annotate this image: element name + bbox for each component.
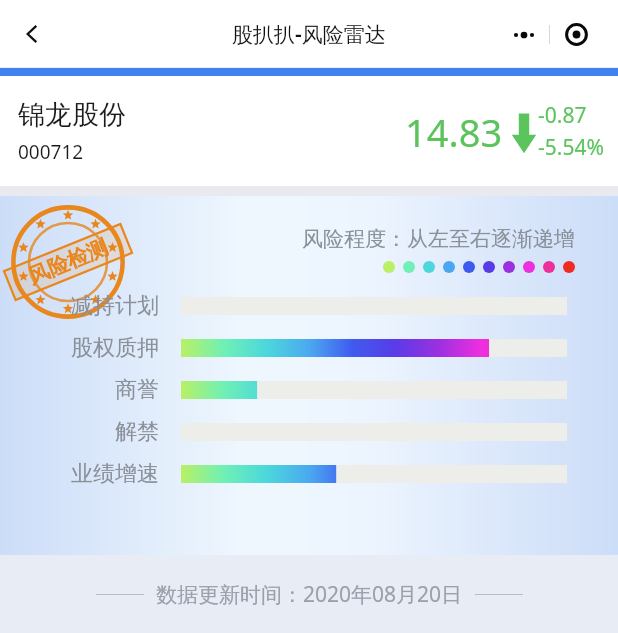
staticText: 数据更新时间：2020年08月20日 <box>156 580 463 609</box>
staticText: -0.87 <box>538 101 587 130</box>
button[interactable]: 解禁 <box>0 411 618 453</box>
staticText: 股扒扒-风险雷达 <box>232 20 386 49</box>
staticText: 业绩增速 <box>71 460 159 488</box>
button[interactable]: More options <box>498 16 549 53</box>
button[interactable]: 股权质押 <box>0 327 618 369</box>
button[interactable]: 商誉 <box>0 369 618 411</box>
staticText: 14.83 <box>405 106 503 158</box>
staticText: 解禁 <box>115 418 159 446</box>
staticText: 股权质押 <box>71 334 159 362</box>
button[interactable]: Back <box>8 10 56 58</box>
staticText: 000712 <box>18 139 84 165</box>
staticText: 减持计划 <box>71 292 159 320</box>
button[interactable]: 减持计划 <box>0 285 618 327</box>
button[interactable]: Target <box>550 16 602 53</box>
button[interactable]: 业绩增速 <box>0 453 618 495</box>
staticText: 风险程度：从左至右逐渐递增 <box>302 226 575 252</box>
staticText: 风险检测 <box>24 234 112 290</box>
staticText: 锦龙股份 <box>18 98 126 132</box>
staticText: 商誉 <box>115 376 159 404</box>
staticText: -5.54% <box>538 133 604 162</box>
